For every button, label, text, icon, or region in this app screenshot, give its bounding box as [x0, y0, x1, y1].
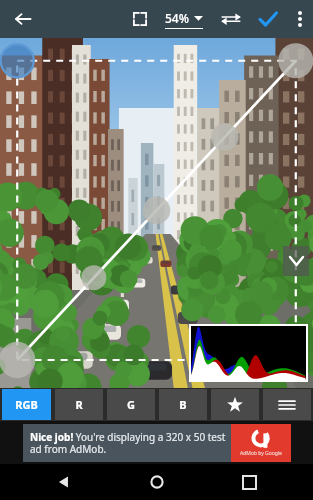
button[interactable]: Home [129, 464, 185, 500]
staticText: Nice job! You're displaying a 320 x 50 t… [30, 430, 231, 456]
button[interactable]: B [159, 389, 207, 420]
button[interactable]: 54% [159, 0, 209, 38]
button[interactable] [191, 326, 306, 380]
button[interactable]: Recents [221, 464, 277, 500]
button[interactable]: Nice job! You're displaying a 320 x 50 t… [23, 424, 291, 462]
button[interactable]: Back [0, 0, 46, 38]
staticText: RGB [15, 397, 38, 412]
button[interactable]: G [107, 389, 155, 420]
button[interactable]: Fit to screen [121, 0, 159, 38]
button[interactable]: More options [287, 0, 313, 38]
button[interactable]: RGB [2, 389, 51, 420]
button[interactable]: Menu [263, 389, 311, 420]
button[interactable]: Collapse panel [283, 246, 309, 276]
button[interactable]: Back [36, 464, 92, 500]
button[interactable]: R [55, 389, 103, 420]
button[interactable]: Compare [213, 0, 249, 38]
staticText: AdMob by Google [240, 450, 282, 457]
staticText: R [75, 397, 83, 412]
button[interactable]: Favorites [211, 389, 259, 420]
staticText: 54% [165, 10, 189, 26]
button[interactable]: Apply [249, 0, 287, 38]
staticText: B [179, 397, 187, 412]
staticText: G [127, 397, 135, 412]
